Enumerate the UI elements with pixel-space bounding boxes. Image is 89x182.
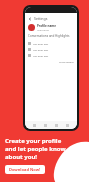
staticText: List item text bbox=[33, 54, 49, 57]
staticText: Conversations and Highlights bbox=[28, 34, 70, 38]
staticText: Profile name bbox=[37, 24, 57, 28]
staticText: Show details bbox=[59, 60, 74, 63]
staticText: Download Now! bbox=[9, 167, 41, 172]
staticText: Settings bbox=[34, 16, 48, 21]
staticText: List item text bbox=[33, 42, 49, 45]
button[interactable]: Download Now! bbox=[5, 165, 45, 174]
staticText: username bbox=[37, 28, 49, 31]
staticText: Create your profile and let people know … bbox=[5, 137, 66, 161]
staticText: List item text bbox=[33, 48, 49, 51]
